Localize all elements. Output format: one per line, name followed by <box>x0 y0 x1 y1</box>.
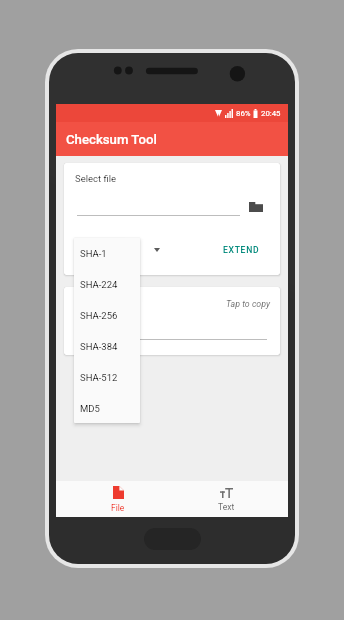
staticText: 86% <box>236 109 251 118</box>
staticText: Text <box>218 502 235 512</box>
button[interactable]: SHA-384 <box>74 331 140 362</box>
button[interactable]: File <box>64 481 172 517</box>
staticText: Checksum Tool <box>66 132 157 147</box>
button[interactable]: SHA-256 <box>74 300 140 331</box>
button[interactable]: Text <box>172 481 280 517</box>
staticText: Tap to copy <box>64 299 270 309</box>
button[interactable]: SHA-512 <box>74 362 140 393</box>
button[interactable]: MD5 <box>74 393 140 423</box>
button[interactable]: SHA-224 <box>74 269 140 300</box>
button[interactable]: Tap to copy <box>64 287 280 355</box>
button[interactable]: Browse files <box>244 197 268 217</box>
button[interactable]: SHA-1 <box>74 238 140 269</box>
staticText: 20:45 <box>261 109 281 118</box>
staticText: SHA-1 <box>80 248 107 259</box>
staticText: SHA-256 <box>80 310 118 321</box>
staticText: SHA-224 <box>80 279 118 290</box>
staticText: EXTEND <box>223 245 260 255</box>
staticText: SHA-512 <box>80 372 118 383</box>
staticText: Select file <box>75 173 117 184</box>
staticText: File <box>111 503 125 513</box>
button[interactable]: EXTEND <box>216 238 266 262</box>
staticText: MD5 <box>80 403 100 414</box>
staticText: SHA-384 <box>80 341 118 352</box>
